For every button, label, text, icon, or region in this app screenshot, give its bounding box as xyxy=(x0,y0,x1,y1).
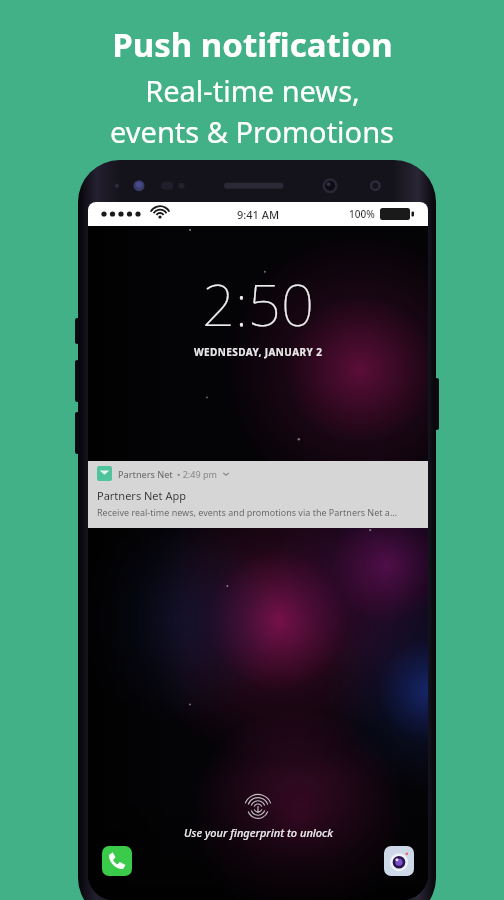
staticText: • 2:49 pm xyxy=(177,468,217,480)
staticText: Real-time news, xyxy=(145,71,360,110)
staticText: 9:41 AM xyxy=(237,207,280,222)
button[interactable]: Phone xyxy=(102,846,132,876)
staticText: Push notification xyxy=(112,22,393,67)
staticText: WEDNESDAY, JANUARY 2 xyxy=(194,345,323,359)
button[interactable]: Partners Net xyxy=(88,461,428,528)
staticText: Partners Net App xyxy=(97,488,186,503)
staticText: 100% xyxy=(349,207,375,221)
button[interactable]: Unlock with fingerprint xyxy=(245,794,271,820)
staticText: events & Promotions xyxy=(110,112,394,151)
staticText: 2:50 xyxy=(202,264,314,343)
staticText: Receive real-time news, events and promo… xyxy=(97,506,398,518)
staticText: Partners Net xyxy=(118,468,173,480)
staticText: Use your fingerprint to unlock xyxy=(184,825,333,840)
button[interactable]: Camera xyxy=(384,846,414,876)
